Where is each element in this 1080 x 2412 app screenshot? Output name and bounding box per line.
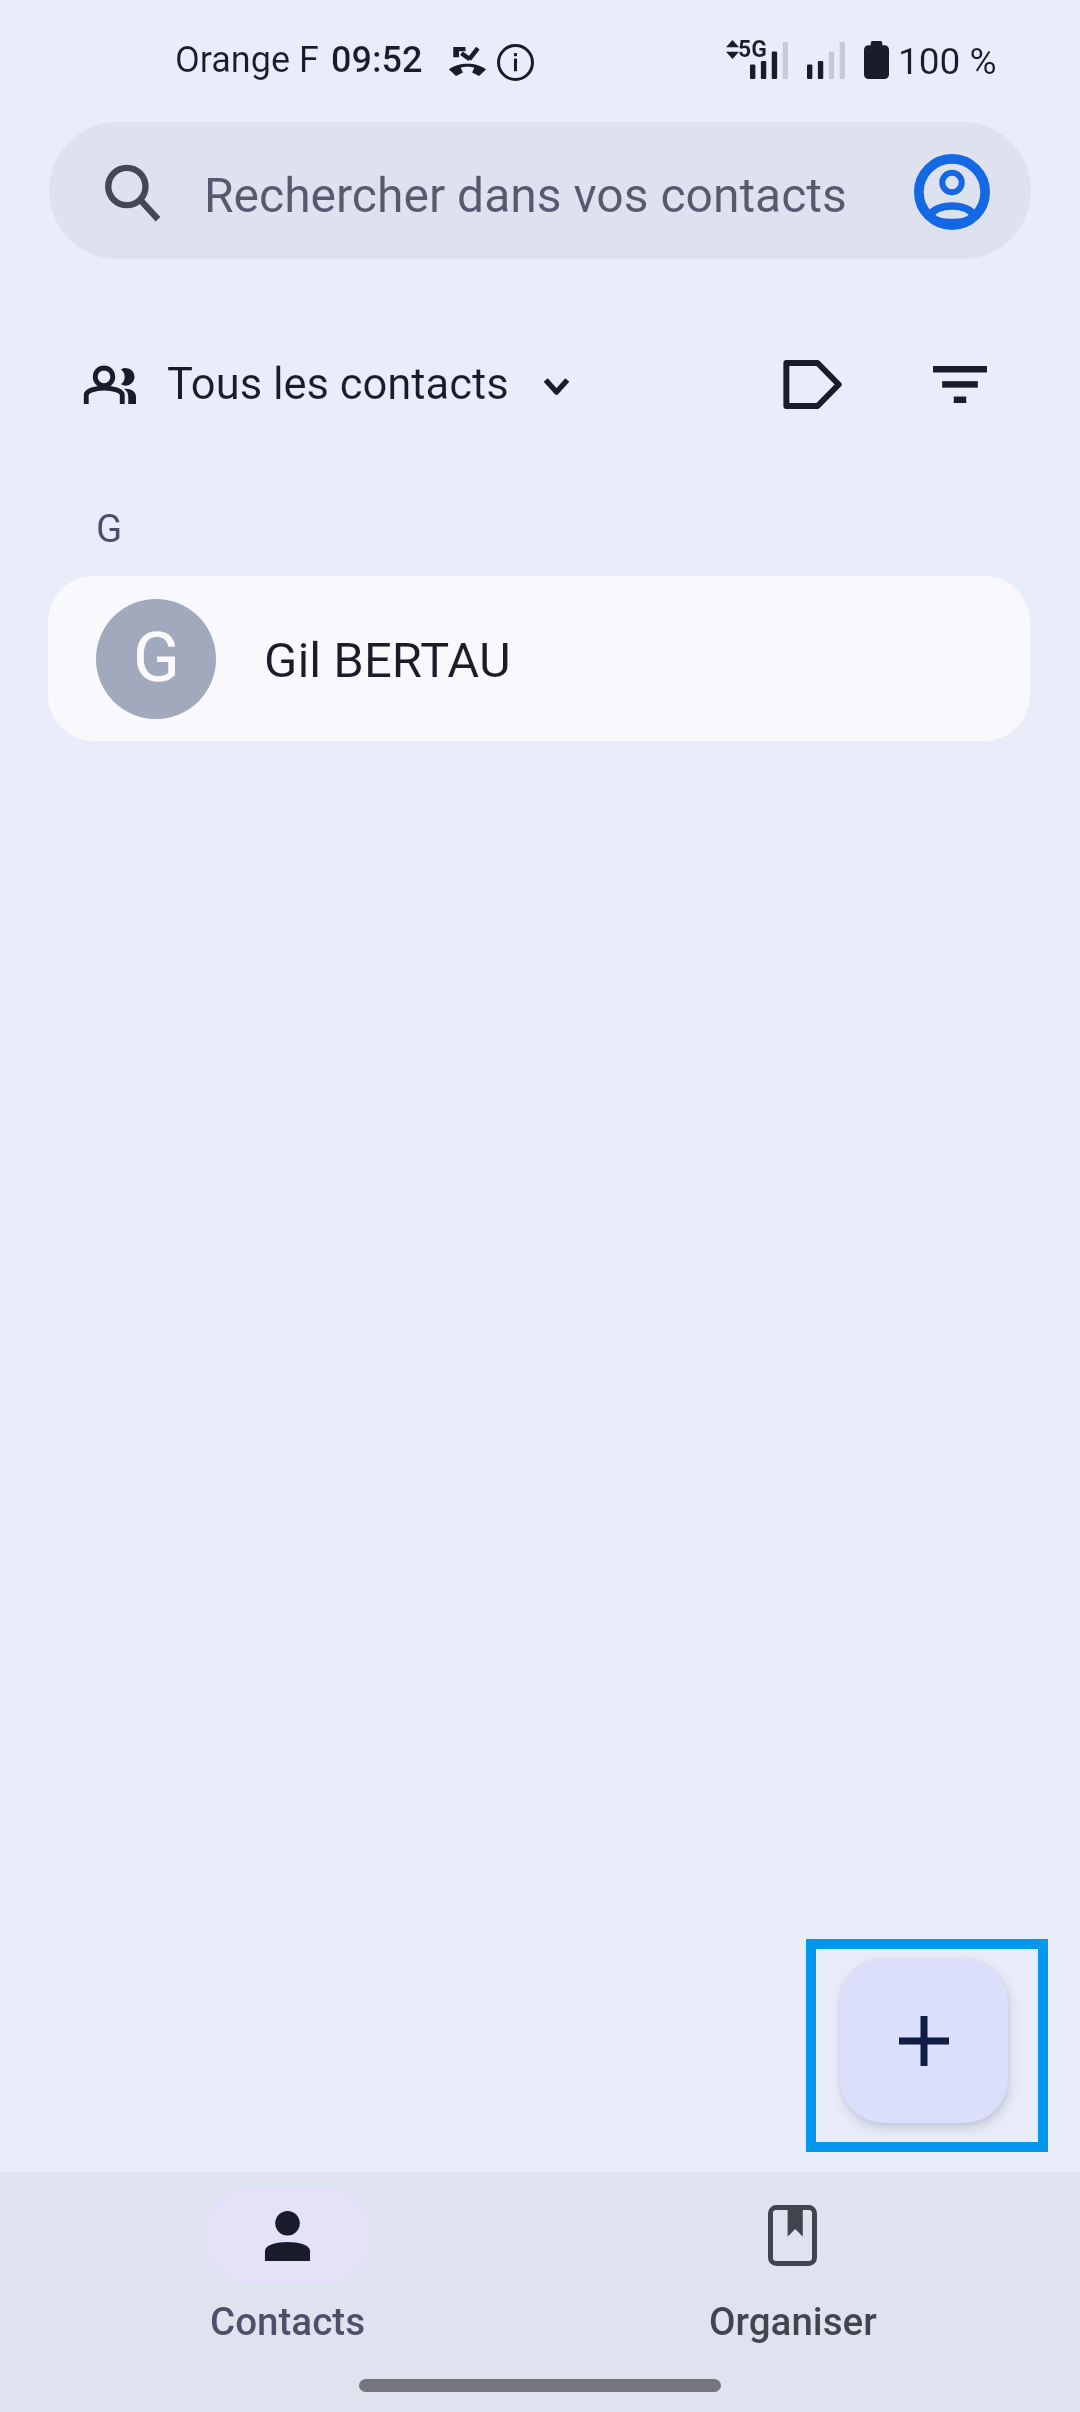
staticText: Organiser <box>709 2299 877 2344</box>
staticText: G <box>133 617 180 698</box>
button[interactable]: Rechercher dans vos contacts <box>49 122 1031 259</box>
button[interactable]: Libellés <box>762 338 858 430</box>
staticText: 09:52 <box>331 39 423 81</box>
button[interactable]: Contacts <box>35 2172 540 2344</box>
staticText: Contacts <box>210 2299 366 2344</box>
button[interactable]: Tous les contacts <box>86 360 570 411</box>
staticText: 100 % <box>898 40 997 83</box>
staticText: Tous les contacts <box>167 359 509 410</box>
staticText: Gil BERTAU <box>264 632 511 689</box>
other: Compte <box>914 154 990 230</box>
staticText: Orange F <box>175 39 319 81</box>
button[interactable]: Créer un contact <box>840 1959 1008 2123</box>
button[interactable]: G <box>48 576 1030 741</box>
staticText: Rechercher dans vos contacts <box>204 167 847 223</box>
button[interactable]: Organiser <box>540 2172 1045 2344</box>
staticText: 5G <box>738 36 767 63</box>
staticText: G <box>96 506 123 551</box>
button[interactable]: Trier <box>912 338 1008 430</box>
